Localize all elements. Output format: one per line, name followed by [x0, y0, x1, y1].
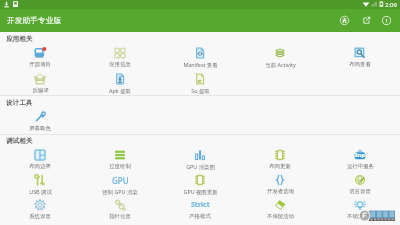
- button[interactable]: 指针位置: [80, 197, 160, 222]
- staticText: GPU 渲染图: [186, 163, 215, 170]
- button[interactable]: 语言设置: [320, 172, 400, 197]
- staticText: 开源项目: [29, 61, 51, 68]
- staticText: 布局更新: [269, 163, 291, 170]
- staticText: 运行中服务: [347, 163, 374, 170]
- staticText: 过度绘制: [109, 163, 131, 170]
- button[interactable]: Inp: [320, 147, 400, 172]
- button[interactable]: So 提取: [160, 71, 240, 95]
- staticText: 不保留活动: [267, 213, 294, 220]
- staticText: Inp: [355, 151, 366, 159]
- button[interactable]: 屏幕吸色: [0, 109, 80, 134]
- staticText: 应用信息: [109, 61, 131, 68]
- staticText: 布局边界: [29, 163, 51, 170]
- button[interactable]: Strict: [160, 197, 240, 222]
- button[interactable]: 布局边界: [0, 147, 80, 172]
- button[interactable]: GPU 渲染图: [160, 147, 240, 172]
- staticText: 当前 Activity: [265, 61, 296, 68]
- staticText: Manifest 查看: [183, 61, 218, 68]
- button[interactable]: 布局更新: [240, 147, 320, 172]
- button[interactable]: USB 调试: [0, 172, 80, 197]
- staticText: 开发者选项: [267, 188, 294, 195]
- staticText: 设计工具: [6, 99, 33, 107]
- button[interactable]: 布局查看: [320, 45, 400, 71]
- button[interactable]: Share: [356, 9, 376, 32]
- staticText: 开发助手专业版: [7, 16, 61, 26]
- staticText: 强制 GPU 渲染: [102, 188, 138, 195]
- button[interactable]: 反编译: [0, 71, 80, 95]
- staticText: 不锁定屏幕: [347, 213, 374, 220]
- staticText: 系统设置: [29, 213, 51, 220]
- staticText: 2:09: [385, 1, 397, 9]
- button[interactable]: 开源项目: [0, 45, 80, 71]
- button[interactable]: GPU: [80, 172, 160, 197]
- staticText: 语言设置: [349, 188, 371, 195]
- staticText: GPU: [112, 175, 129, 186]
- staticText: USB 调试: [29, 188, 52, 195]
- button[interactable]: 开发者选项: [240, 172, 320, 197]
- staticText: 屏幕吸色: [29, 125, 51, 132]
- button[interactable]: 不锁定屏幕: [320, 197, 400, 222]
- staticText: GPU 视图更新: [183, 188, 218, 195]
- staticText: 调试相关: [6, 137, 33, 145]
- staticText: Strict: [191, 200, 210, 210]
- button[interactable]: 应用信息: [80, 45, 160, 71]
- staticText: 指针位置: [109, 213, 131, 220]
- staticText: 严格模式: [189, 213, 211, 220]
- button[interactable]: 系统设置: [0, 197, 80, 222]
- button[interactable]: GPU 视图更新: [160, 172, 240, 197]
- button[interactable]: About: [376, 9, 396, 32]
- staticText: Apk 提取: [109, 87, 131, 94]
- button[interactable]: GitHub: [334, 9, 354, 32]
- staticText: So 提取: [191, 87, 210, 94]
- staticText: 布局查看: [349, 61, 371, 68]
- staticText: 反编译: [32, 87, 49, 94]
- button[interactable]: Apk 提取: [80, 71, 160, 95]
- button[interactable]: Manifest 查看: [160, 45, 240, 71]
- button[interactable]: 不保留活动: [240, 197, 320, 222]
- button[interactable]: 当前 Activity: [240, 45, 320, 71]
- staticText: 应用相关: [6, 35, 33, 43]
- button[interactable]: 过度绘制: [80, 147, 160, 172]
